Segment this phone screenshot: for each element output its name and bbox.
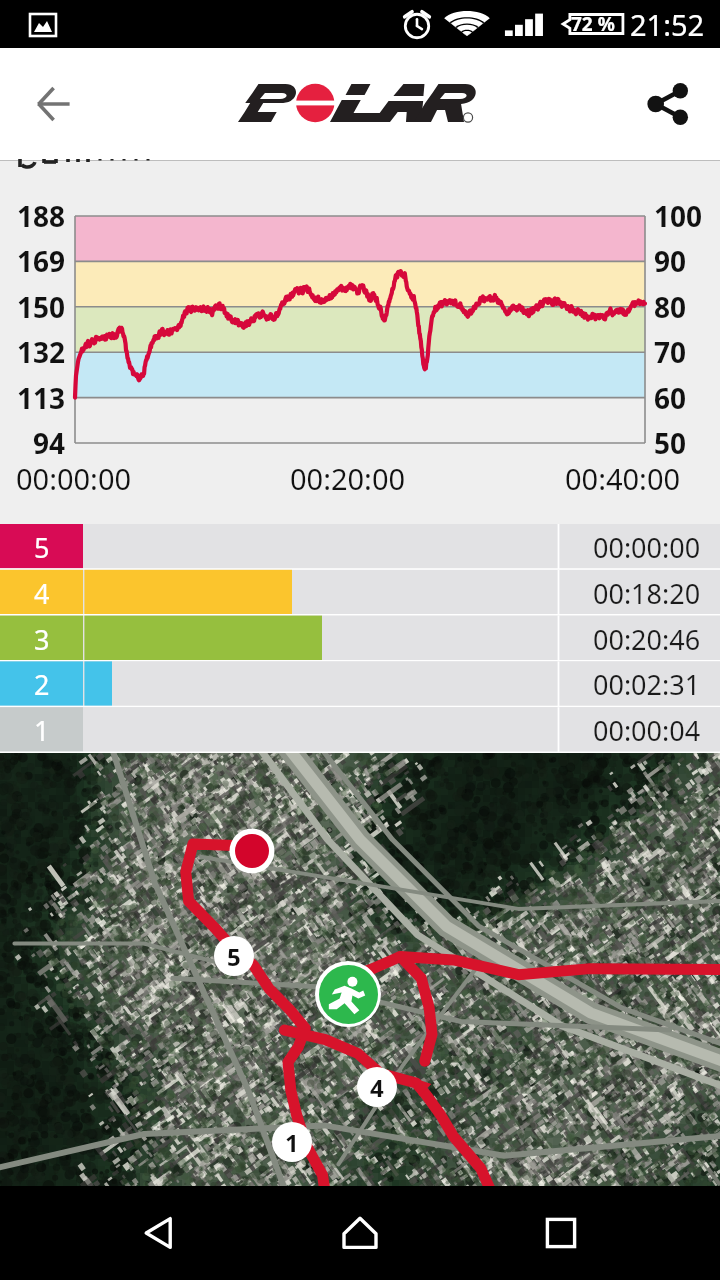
staticText: 00:40:00 xyxy=(565,459,681,498)
button[interactable]: Recents xyxy=(519,1191,603,1275)
staticText: 5 xyxy=(34,529,50,566)
staticText: 2 xyxy=(34,666,50,703)
button[interactable]: 1 xyxy=(0,707,720,753)
staticText: 1 xyxy=(285,1126,299,1159)
staticText: 5 xyxy=(227,940,241,973)
button[interactable]: 5 xyxy=(0,524,720,570)
staticText: 1 xyxy=(34,712,50,749)
staticText: 60 xyxy=(654,379,687,417)
staticText: 80 xyxy=(654,288,687,326)
staticText: 100 xyxy=(654,197,703,235)
button[interactable]: Home xyxy=(318,1191,402,1275)
staticText: 00:00:00 xyxy=(593,529,701,566)
staticText: 00:18:20 xyxy=(593,575,701,612)
staticText: 132 xyxy=(17,333,66,371)
staticText: 50 xyxy=(654,424,687,462)
staticText: 70 xyxy=(654,333,687,371)
staticText: 94 xyxy=(33,424,66,462)
staticText: 113 xyxy=(17,379,66,417)
staticText: 00:20:46 xyxy=(593,621,701,658)
button[interactable]: Back xyxy=(117,1191,201,1275)
staticText: 188 xyxy=(17,197,66,235)
button[interactable]: Kilometre marker 1 xyxy=(272,1122,312,1162)
staticText: 90 xyxy=(654,242,687,280)
staticText: 169 xyxy=(17,242,66,280)
staticText: 21:52 xyxy=(630,5,705,44)
staticText: 00:00:00 xyxy=(16,459,132,498)
button[interactable]: 4 xyxy=(0,570,720,616)
button[interactable]: Running activity xyxy=(315,961,381,1027)
button[interactable]: Share xyxy=(632,68,704,140)
button[interactable]: Back xyxy=(20,68,92,140)
button[interactable]: 2 xyxy=(0,661,720,707)
staticText: 00:02:31 xyxy=(593,666,701,703)
staticText: 72 % xyxy=(571,11,615,37)
button[interactable]: Kilometre marker 4 xyxy=(357,1067,397,1107)
staticText: 00:00:04 xyxy=(593,712,701,749)
staticText: 4 xyxy=(34,575,50,612)
staticText: 150 xyxy=(17,288,66,326)
button[interactable]: Kilometre marker 5 xyxy=(214,936,254,976)
staticText: 4 xyxy=(370,1071,384,1104)
staticText: 3 xyxy=(34,621,50,658)
staticText: 00:20:00 xyxy=(290,459,406,498)
button[interactable]: 3 xyxy=(0,616,720,662)
